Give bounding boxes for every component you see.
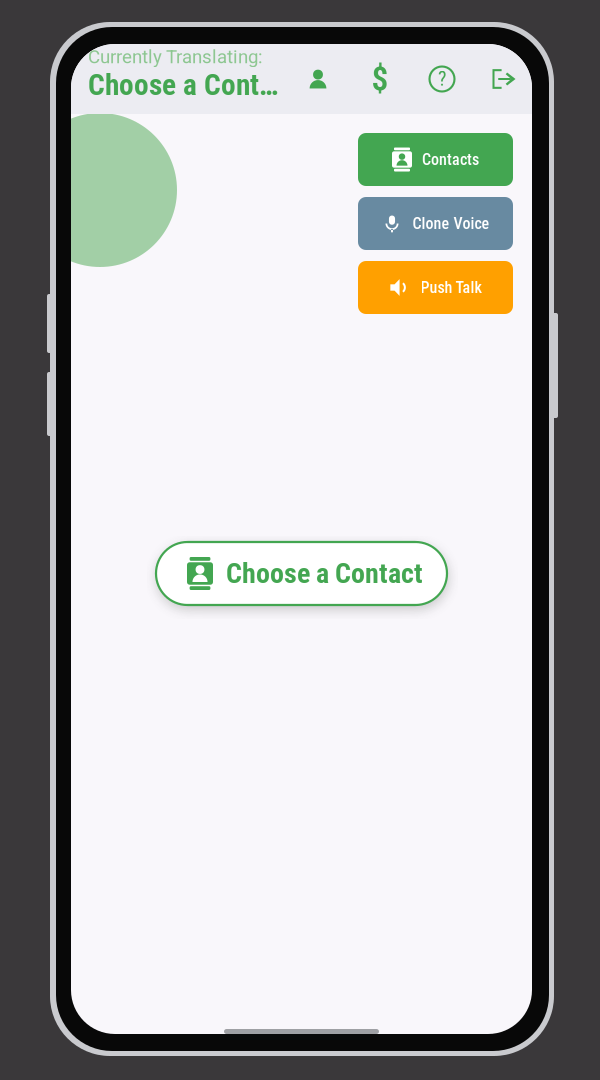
- button[interactable]: Push Talk: [358, 261, 513, 314]
- button[interactable]: Account: [287, 54, 349, 104]
- button[interactable]: Contacts: [358, 133, 513, 186]
- staticText: $: [371, 59, 388, 99]
- staticText: Choose a Contact: [226, 557, 423, 590]
- staticText: Contacts: [422, 150, 479, 169]
- staticText: Push Talk: [420, 278, 481, 297]
- button[interactable]: Choose a Contact: [156, 542, 447, 605]
- button[interactable]: Help: [411, 54, 473, 104]
- staticText: Currently Translating:: [88, 46, 263, 68]
- staticText: Clone Voice: [412, 214, 489, 233]
- staticText: ?: [438, 67, 446, 91]
- staticText: Choose a Cont…: [88, 68, 278, 102]
- button[interactable]: Sign out: [473, 54, 535, 104]
- button[interactable]: Clone Voice: [358, 197, 513, 250]
- button[interactable]: Billing: [349, 54, 411, 104]
